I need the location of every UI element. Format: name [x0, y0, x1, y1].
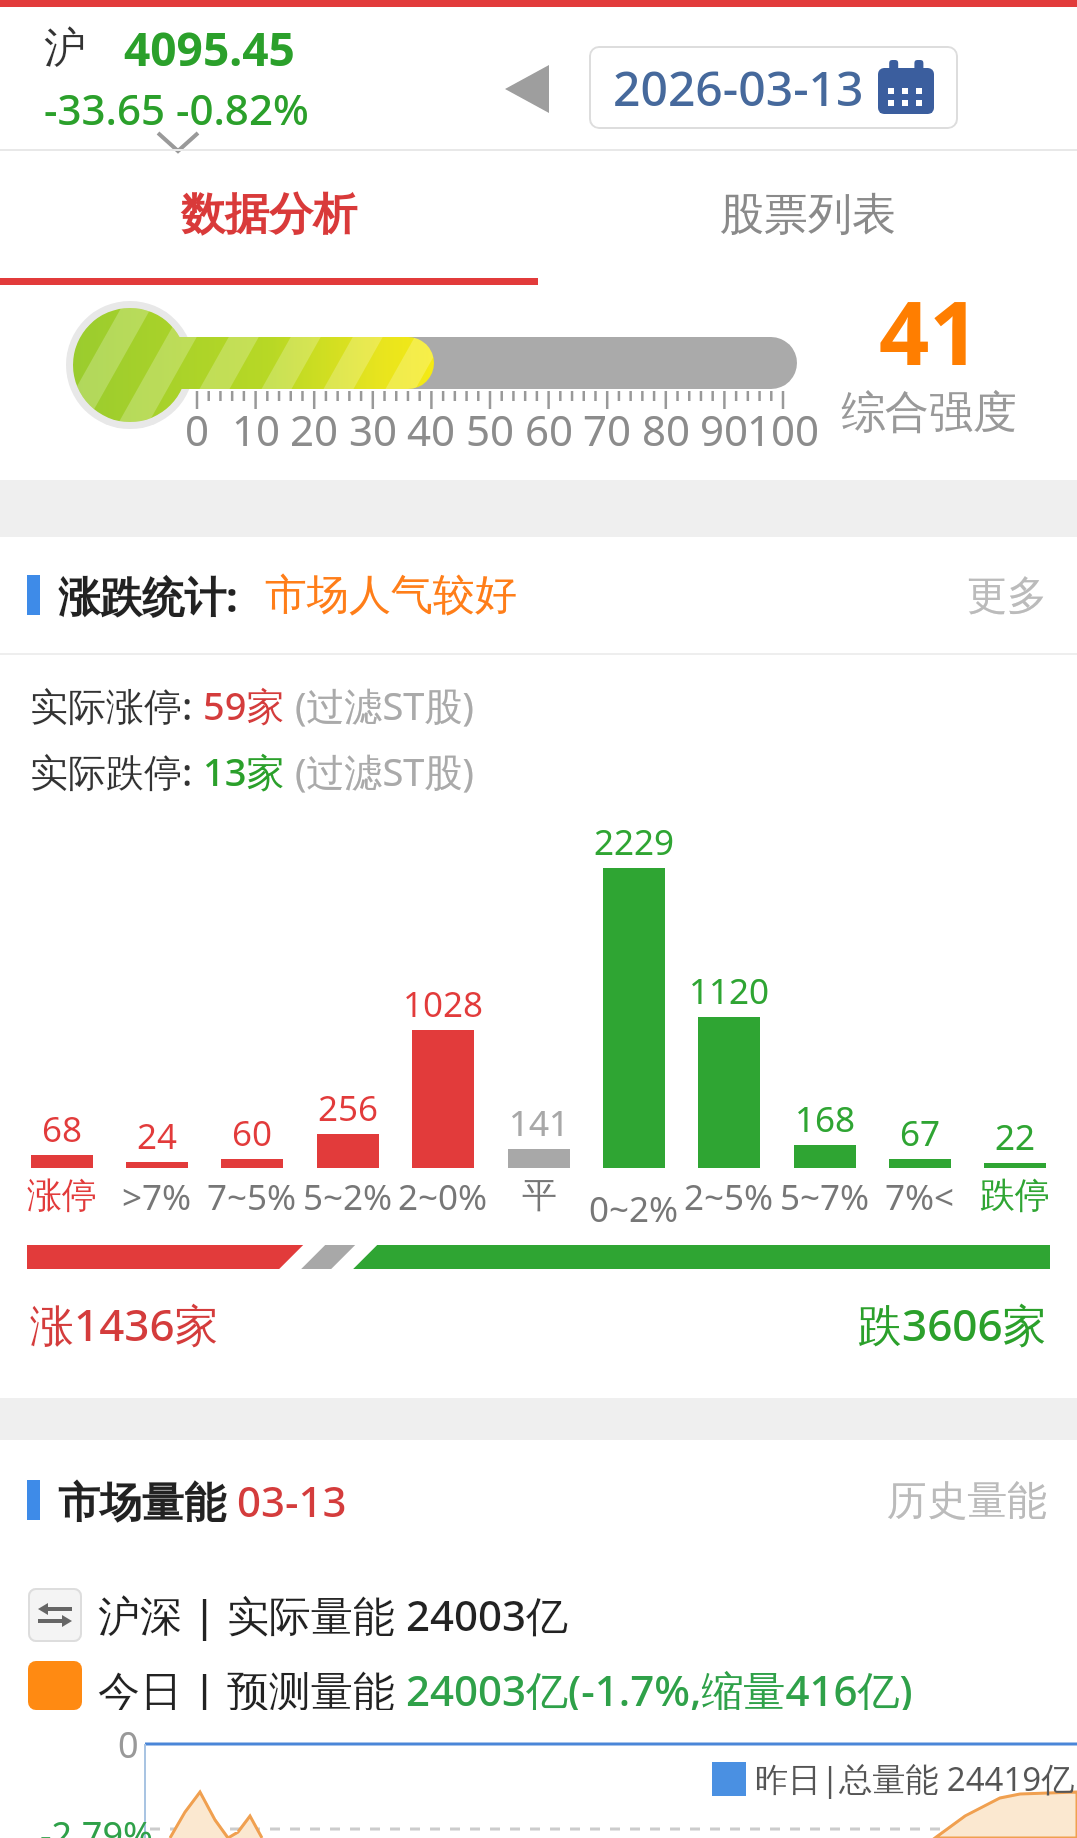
staticText: 昨日|总量能 24419亿 — [755, 1756, 1075, 1801]
staticText: 03-13 — [237, 1472, 347, 1529]
staticText: >7% — [122, 1173, 192, 1221]
staticText: 7~5% — [207, 1173, 297, 1221]
staticText: 90 — [700, 401, 749, 458]
staticText: 0~2% — [589, 1185, 679, 1233]
staticText: 平 — [522, 1173, 557, 1217]
staticText: 沪深 | 实际量能 24003亿 — [98, 1586, 569, 1643]
staticText: 5~7% — [780, 1173, 870, 1221]
staticText: 2229 — [594, 818, 675, 866]
staticText: 41 — [879, 271, 980, 391]
staticText: 80 — [642, 401, 691, 458]
staticText: 实际涨停: — [30, 679, 203, 731]
staticText: 数据分析 — [181, 187, 357, 242]
staticText: 141 — [509, 1099, 570, 1147]
staticText: 20 — [290, 401, 339, 458]
staticText: 更多 — [967, 570, 1047, 620]
staticText: 68 — [42, 1105, 83, 1153]
staticText: 168 — [795, 1095, 856, 1143]
staticText: 7%< — [885, 1173, 955, 1221]
staticText: 综合强度 — [841, 385, 1017, 440]
staticText: 2026-03-13 — [613, 55, 864, 120]
staticText: 实际跌停: — [30, 745, 203, 797]
staticText: 涨跌统计: — [58, 567, 249, 624]
staticText: 股票列表 — [720, 187, 896, 242]
button[interactable]: 市场量能 — [0, 1440, 1077, 1560]
staticText: 70 — [583, 401, 632, 458]
staticText: (过滤ST股) — [295, 679, 474, 731]
staticText: 24 — [137, 1112, 178, 1160]
staticText: 256 — [318, 1084, 379, 1132]
button[interactable] — [505, 65, 549, 113]
staticText: 0 — [185, 401, 210, 458]
button[interactable]: 涨跌统计: — [0, 537, 1077, 653]
staticText: 跌3606家 — [858, 1294, 1047, 1354]
staticText: 4095.45 — [124, 17, 295, 80]
button[interactable]: 股票列表 — [538, 151, 1077, 278]
staticText: 历史量能 — [887, 1475, 1047, 1525]
button[interactable]: 数据分析 — [0, 151, 538, 278]
staticText: 2~5% — [684, 1173, 774, 1221]
staticText: 沪 — [44, 22, 86, 75]
button[interactable]: 2026-03-13 — [589, 46, 958, 129]
staticText: 40 — [407, 401, 456, 458]
button[interactable]: 沪 — [44, 17, 309, 137]
staticText: 59家 — [203, 679, 295, 731]
staticText: 22 — [995, 1113, 1036, 1161]
staticText: 5~2% — [303, 1173, 393, 1221]
staticText: 市场量能 — [58, 1472, 237, 1529]
staticText: 100 — [747, 401, 820, 458]
staticText: 涨停 — [27, 1173, 97, 1217]
staticText: -33.65 -0.82% — [44, 80, 309, 137]
staticText: 13家 — [203, 745, 295, 797]
staticText: 24003亿(-1.7%,缩量416亿) — [406, 1661, 913, 1710]
staticText: 2~0% — [398, 1173, 488, 1221]
staticText: 67 — [900, 1109, 941, 1157]
staticText: (过滤ST股) — [295, 745, 474, 797]
staticText: 50 — [466, 401, 515, 458]
staticText: 1028 — [403, 980, 484, 1028]
staticText: 10 — [232, 401, 281, 458]
staticText: 30 — [349, 401, 398, 458]
staticText: 60 — [232, 1109, 273, 1157]
staticText: 涨1436家 — [30, 1294, 219, 1354]
staticText: -2.79% — [40, 1810, 153, 1838]
staticText: 今日 | 预测量能 — [98, 1661, 406, 1710]
staticText: 60 — [525, 401, 574, 458]
staticText: 市场人气较好 — [265, 569, 517, 622]
staticText: 1120 — [689, 967, 770, 1015]
staticText: 跌停 — [980, 1173, 1050, 1217]
staticText: 0 — [118, 1720, 139, 1769]
